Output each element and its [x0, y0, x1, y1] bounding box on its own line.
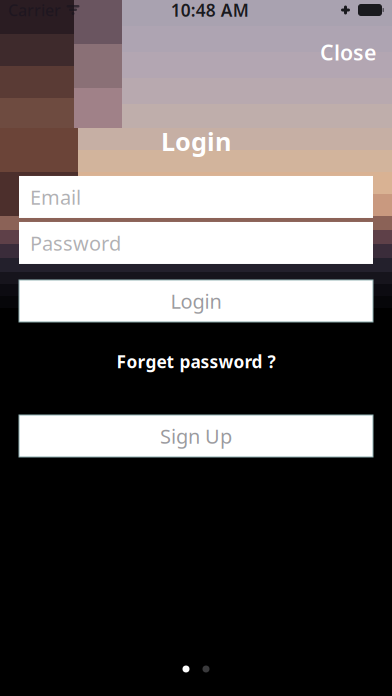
button[interactable]: Password: [19, 222, 373, 264]
staticText: Password: [30, 230, 121, 256]
staticText: Login: [161, 124, 231, 158]
staticText: Forget password ?: [116, 350, 275, 373]
staticText: Login: [170, 288, 221, 314]
button[interactable]: Forget password ?: [106, 344, 285, 379]
button[interactable]: Close: [312, 32, 384, 72]
staticText: Email: [30, 184, 81, 210]
staticText: Sign Up: [160, 423, 232, 449]
staticText: 10:48 AM: [171, 0, 249, 21]
staticText: Close: [320, 38, 376, 66]
staticText: Carrier: [8, 0, 61, 21]
button[interactable]: Email: [19, 176, 373, 218]
button[interactable]: Sign Up: [19, 415, 373, 457]
button[interactable]: Login: [19, 280, 373, 322]
